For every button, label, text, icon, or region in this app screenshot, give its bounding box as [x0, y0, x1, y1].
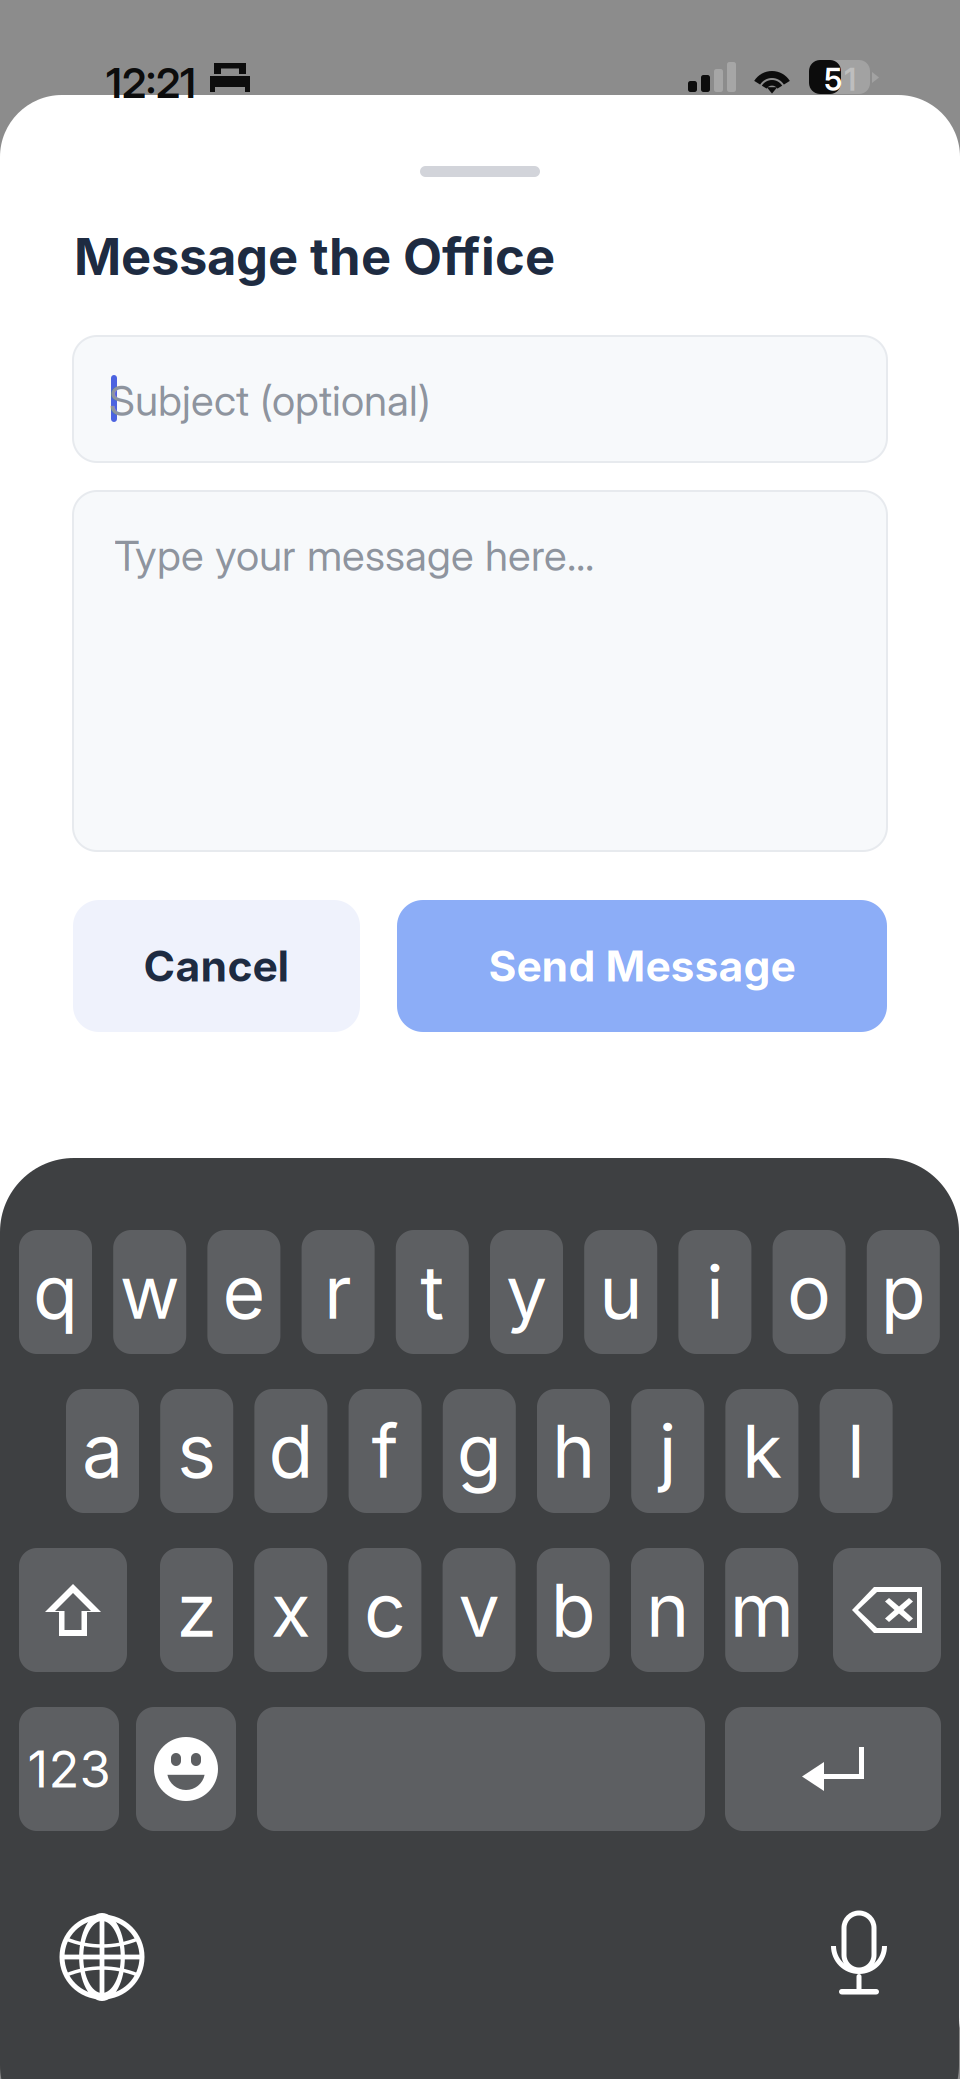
- staticText: p: [881, 1248, 926, 1336]
- staticText: f: [372, 1407, 399, 1495]
- button[interactable]: Numbers: [19, 1707, 119, 1831]
- button[interactable]: q: [19, 1230, 92, 1354]
- button[interactable]: h: [537, 1389, 610, 1513]
- button[interactable]: u: [584, 1230, 657, 1354]
- button[interactable]: b: [537, 1548, 610, 1672]
- button[interactable]: x: [254, 1548, 327, 1672]
- button[interactable]: s: [160, 1389, 233, 1513]
- staticText: o: [787, 1248, 831, 1336]
- button[interactable]: v: [443, 1548, 516, 1672]
- button[interactable]: Emoji: [136, 1707, 236, 1831]
- staticText: q: [33, 1248, 78, 1336]
- button[interactable]: l: [820, 1389, 893, 1513]
- button[interactable]: g: [443, 1389, 516, 1513]
- button[interactable]: k: [725, 1389, 798, 1513]
- staticText: b: [551, 1566, 596, 1654]
- staticText: 123: [27, 1738, 110, 1800]
- button[interactable]: i: [678, 1230, 751, 1354]
- staticText: z: [176, 1566, 216, 1654]
- staticText: Send Message: [488, 940, 795, 992]
- button[interactable]: Send Message: [397, 900, 887, 1032]
- staticText: n: [646, 1566, 689, 1654]
- staticText: 1: [844, 61, 856, 85]
- button[interactable]: t: [396, 1230, 469, 1354]
- staticText: Message the Office: [74, 226, 555, 284]
- staticText: u: [599, 1248, 642, 1336]
- button[interactable]: Shift: [19, 1548, 127, 1672]
- staticText: Cancel: [143, 940, 289, 992]
- button[interactable]: m: [725, 1548, 798, 1672]
- staticText: l: [847, 1407, 865, 1495]
- staticText: s: [177, 1407, 216, 1495]
- staticText: g: [457, 1407, 502, 1495]
- staticText: 5: [824, 61, 842, 85]
- button[interactable]: a: [66, 1389, 139, 1513]
- button[interactable]: y: [490, 1230, 563, 1354]
- staticText: i: [706, 1248, 724, 1336]
- staticText: Subject (optional): [109, 375, 431, 426]
- staticText: d: [268, 1407, 313, 1495]
- button[interactable]: Subject (optional): [73, 336, 887, 462]
- button[interactable]: p: [867, 1230, 940, 1354]
- staticText: m: [730, 1566, 794, 1654]
- staticText: t: [420, 1248, 444, 1336]
- staticText: x: [271, 1566, 311, 1654]
- staticText: w: [120, 1248, 180, 1336]
- button[interactable]: o: [773, 1230, 846, 1354]
- staticText: r: [324, 1248, 352, 1336]
- staticText: 12:21: [106, 58, 196, 100]
- button[interactable]: Next keyboard: [62, 1917, 142, 1997]
- button[interactable]: Return: [725, 1707, 941, 1831]
- button[interactable]: w: [113, 1230, 186, 1354]
- button[interactable]: c: [348, 1548, 421, 1672]
- button[interactable]: z: [160, 1548, 233, 1672]
- button[interactable]: n: [631, 1548, 704, 1672]
- staticText: e: [222, 1248, 265, 1336]
- button[interactable]: Dictation: [831, 1913, 887, 1999]
- staticText: k: [742, 1407, 782, 1495]
- button[interactable]: Cancel: [73, 900, 360, 1032]
- staticText: v: [459, 1566, 500, 1654]
- button[interactable]: f: [349, 1389, 422, 1513]
- staticText: Type your message here...: [114, 530, 594, 581]
- button[interactable]: j: [631, 1389, 704, 1513]
- button[interactable]: Delete: [833, 1548, 941, 1672]
- staticText: y: [506, 1248, 547, 1336]
- staticText: j: [659, 1407, 677, 1495]
- staticText: c: [364, 1566, 406, 1654]
- button[interactable]: Type your message here...: [73, 491, 887, 851]
- button[interactable]: r: [302, 1230, 375, 1354]
- button[interactable]: e: [207, 1230, 280, 1354]
- staticText: h: [552, 1407, 595, 1495]
- staticText: a: [82, 1407, 123, 1495]
- button[interactable]: d: [254, 1389, 327, 1513]
